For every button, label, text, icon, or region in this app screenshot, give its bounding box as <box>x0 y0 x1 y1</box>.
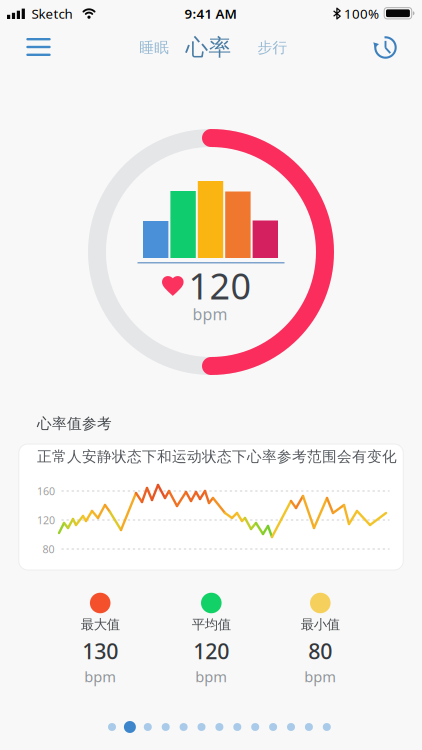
staticText: bpm <box>304 667 336 686</box>
button[interactable]: 步行 <box>257 38 287 56</box>
staticText: 步行 <box>257 38 287 56</box>
staticText: 平均值 <box>192 616 231 633</box>
staticText: 160 <box>37 484 55 498</box>
staticText: 120 <box>193 637 229 665</box>
staticText: Sketch <box>31 5 72 22</box>
staticText: 80 <box>42 542 54 556</box>
staticText: 120 <box>188 262 251 309</box>
staticText: bpm <box>195 667 227 686</box>
staticText: bpm <box>192 303 227 325</box>
staticText: 130 <box>82 637 118 665</box>
staticText: 最大值 <box>81 616 120 633</box>
staticText: 9:41 AM <box>184 5 236 22</box>
button[interactable]: History <box>368 30 402 64</box>
staticText: 100% <box>344 5 379 22</box>
staticText: 睡眠 <box>139 38 169 56</box>
staticText: 120 <box>37 513 55 527</box>
staticText: 心率 <box>185 34 231 61</box>
staticText: 心率值参考 <box>37 414 112 432</box>
button[interactable]: 睡眠 <box>139 38 169 56</box>
staticText: 80 <box>308 637 332 665</box>
button[interactable]: Menu <box>23 35 53 60</box>
button[interactable]: 心率 <box>185 34 231 61</box>
staticText: 正常人安静状态下和运动状态下心率参考范围会有变化 <box>37 447 397 465</box>
staticText: 最小值 <box>301 616 340 633</box>
staticText: bpm <box>84 667 116 686</box>
